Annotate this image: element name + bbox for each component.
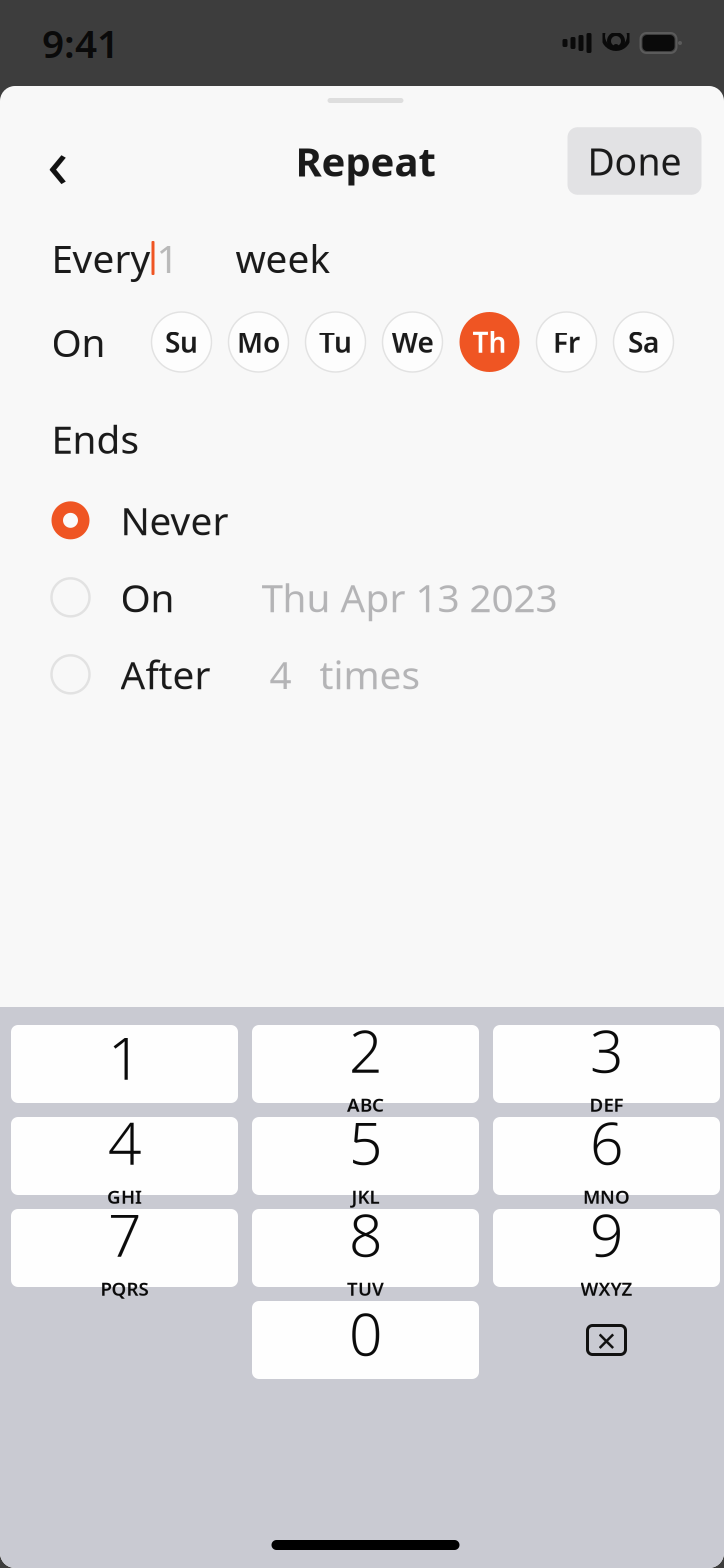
button[interactable]: 8 — [252, 1209, 479, 1287]
staticText: week — [235, 232, 330, 284]
staticText: PQRS — [100, 1276, 148, 1301]
staticText: JKL — [351, 1184, 379, 1209]
staticText: 8 — [349, 1195, 382, 1273]
staticText: DEF — [589, 1092, 623, 1117]
button[interactable]: On — [3, 561, 724, 633]
staticText: 4 — [269, 649, 291, 700]
staticText: We — [391, 323, 433, 361]
button[interactable]: Su — [151, 312, 211, 372]
button[interactable]: 9 — [493, 1209, 720, 1287]
staticText: × — [596, 1317, 616, 1363]
staticText: After — [120, 649, 210, 700]
staticText: ‹ — [47, 115, 68, 207]
button[interactable]: Never — [3, 484, 724, 556]
staticText: 6 — [590, 1103, 623, 1181]
staticText: Ends — [51, 413, 139, 464]
staticText: 1 — [108, 1018, 141, 1096]
button[interactable]: 6 — [493, 1117, 720, 1195]
staticText: 7 — [108, 1195, 141, 1273]
staticText: times — [319, 649, 420, 700]
button[interactable]: After — [3, 638, 724, 710]
button[interactable]: Fr — [536, 312, 596, 372]
staticText: 2 — [349, 1011, 382, 1089]
staticText: 1 — [156, 232, 178, 284]
staticText: 9 — [590, 1195, 623, 1273]
staticText: Fr — [553, 323, 580, 361]
button[interactable]: Th — [459, 312, 519, 372]
staticText: 9:41 — [42, 17, 119, 69]
button[interactable]: 0 — [252, 1301, 479, 1379]
staticText: 0 — [349, 1294, 382, 1372]
staticText: GHI — [107, 1184, 142, 1209]
button[interactable]: 1 — [151, 236, 235, 280]
staticText: Sa — [628, 323, 659, 361]
button[interactable]: 3 — [493, 1025, 720, 1103]
button[interactable]: 2 — [252, 1025, 479, 1103]
staticText: MNO — [583, 1184, 630, 1209]
button[interactable]: Back — [29, 133, 85, 189]
staticText: WXYZ — [580, 1276, 632, 1301]
button[interactable]: We — [382, 312, 442, 372]
staticText: Every — [51, 232, 150, 284]
staticText: ABC — [347, 1092, 384, 1117]
button[interactable]: 7 — [11, 1209, 238, 1287]
button[interactable]: 5 — [252, 1117, 479, 1195]
staticText: 3 — [590, 1011, 623, 1089]
staticText: 5 — [349, 1103, 382, 1181]
button[interactable]: Done — [567, 127, 701, 195]
staticText: On — [51, 316, 105, 368]
staticText: Done — [587, 136, 681, 186]
button[interactable]: 1 — [11, 1025, 238, 1103]
button[interactable]: Delete — [493, 1301, 720, 1379]
staticText: Tu — [319, 323, 352, 361]
staticText: Su — [165, 323, 198, 361]
button[interactable]: Tu — [305, 312, 365, 372]
staticText: TUV — [347, 1276, 384, 1301]
staticText: Mo — [237, 323, 280, 361]
button[interactable]: Sa — [613, 312, 673, 372]
button[interactable]: Mo — [228, 312, 288, 372]
staticText: Repeat — [295, 134, 435, 187]
staticText: 4 — [108, 1103, 141, 1181]
staticText: Th — [472, 323, 506, 361]
button[interactable]: 4 — [11, 1117, 238, 1195]
staticText: Never — [120, 495, 228, 546]
staticText: Thu Apr 13 2023 — [261, 572, 557, 623]
staticText: On — [120, 572, 174, 623]
